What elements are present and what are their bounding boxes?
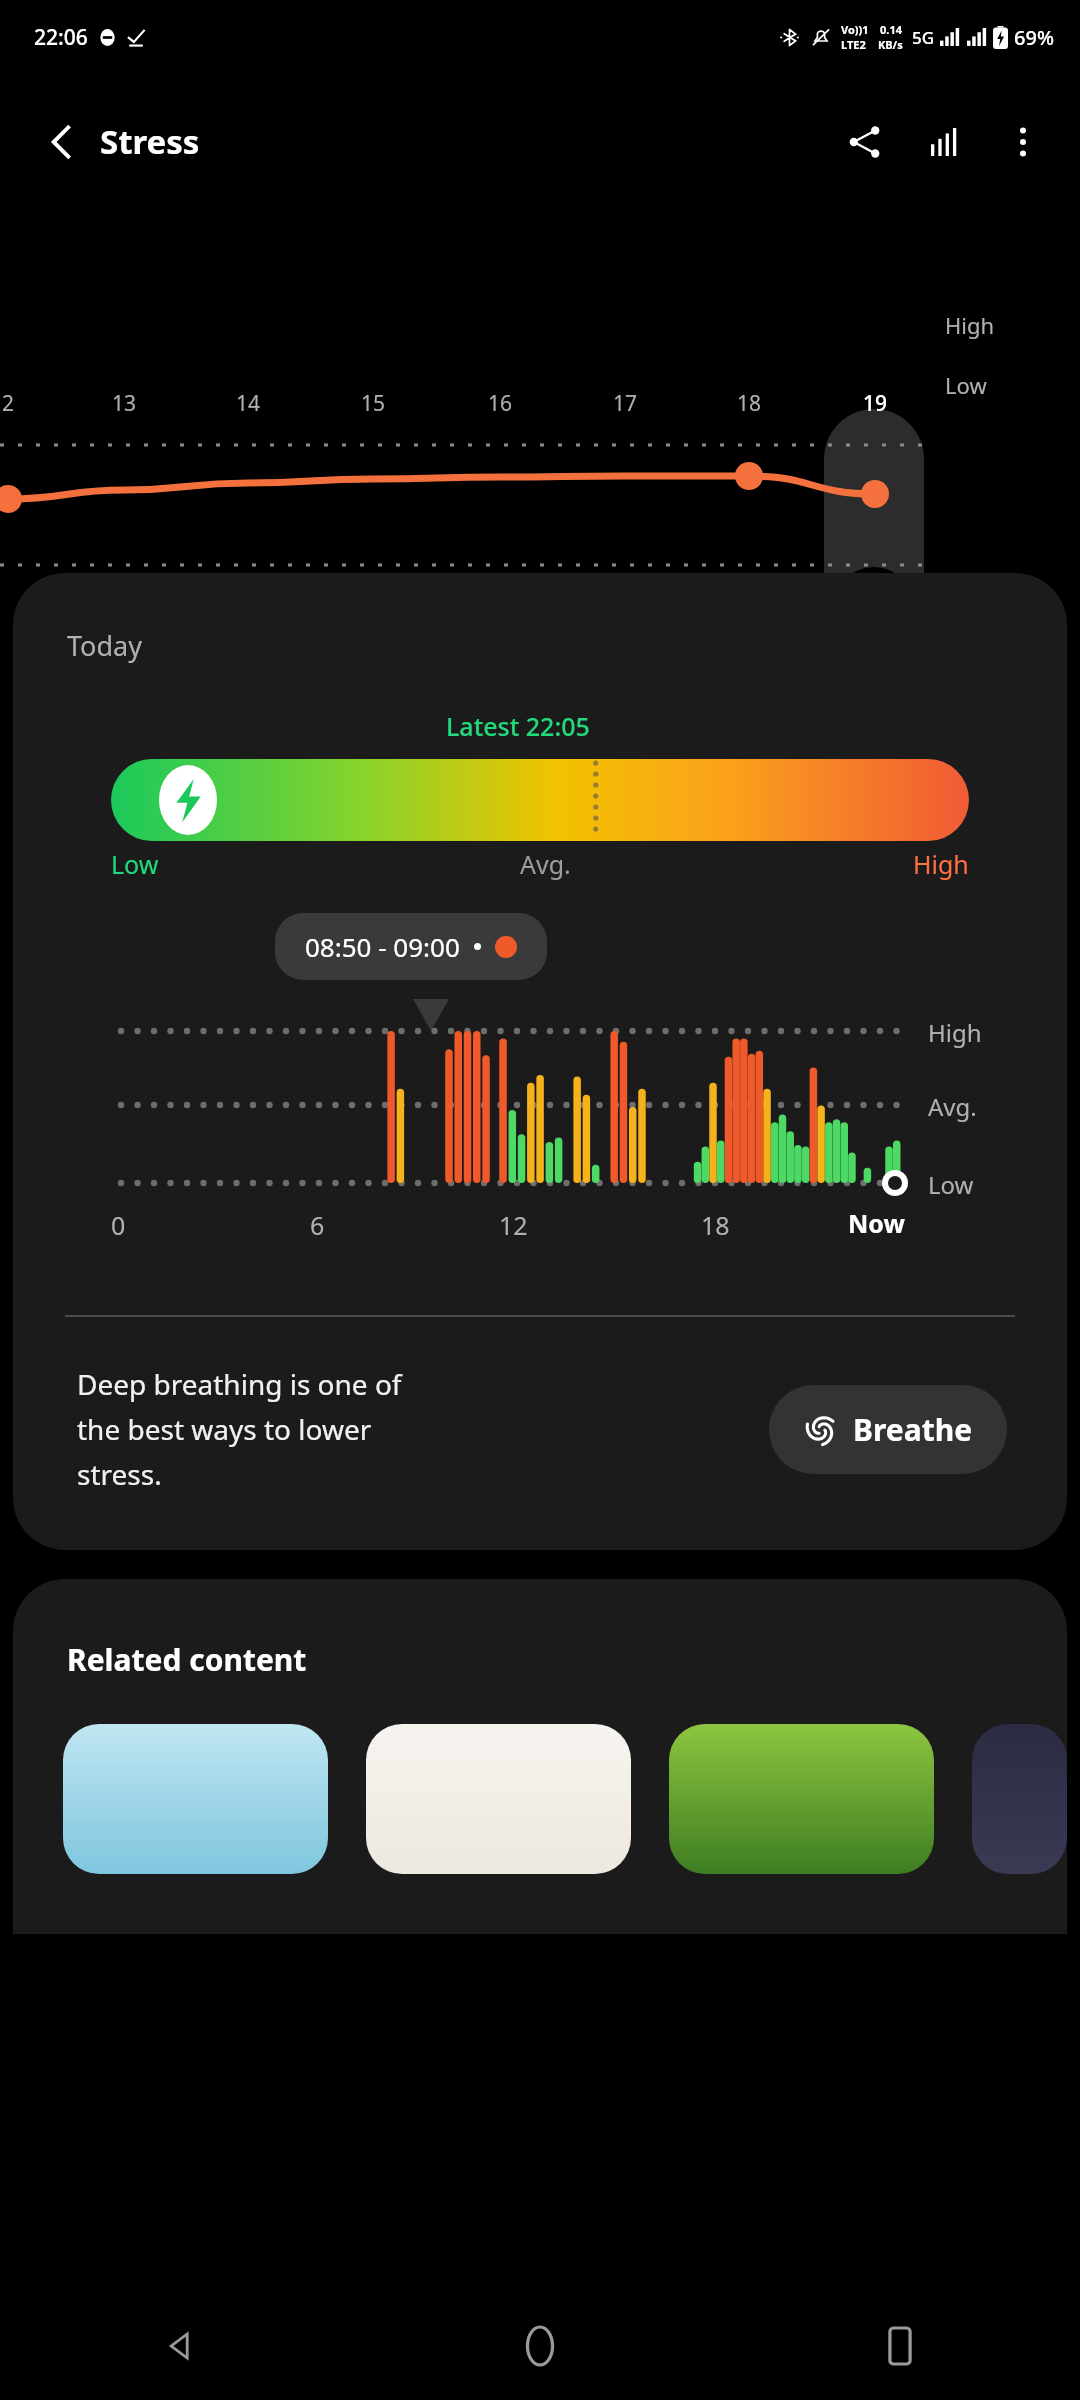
staticText: High <box>913 847 969 881</box>
button[interactable]: Recents <box>720 2292 1080 2400</box>
staticText: LTE2 <box>841 37 866 52</box>
button[interactable]: Breathe <box>769 1385 1007 1474</box>
button[interactable] <box>63 1724 328 1874</box>
button[interactable] <box>972 1724 1067 1874</box>
staticText: 2 <box>0 389 28 418</box>
staticText: 18 <box>729 389 769 418</box>
button[interactable] <box>366 1724 631 1874</box>
staticText: Avg. <box>928 1090 977 1123</box>
staticText: Vo))1 <box>841 22 869 37</box>
staticText: 13 <box>104 389 144 418</box>
staticText: Deep breathing is one of the best ways t… <box>77 1365 402 1494</box>
staticText: 0.14 <box>880 22 902 37</box>
staticText: Low <box>928 1168 974 1201</box>
staticText: Low <box>945 370 987 400</box>
staticText: High <box>928 1016 982 1049</box>
staticText: 0 <box>111 1208 126 1242</box>
staticText: 12 <box>499 1208 528 1242</box>
button[interactable]: Chart <box>916 113 974 171</box>
staticText: 22:06 <box>34 23 88 52</box>
staticText: 16 <box>480 389 520 418</box>
staticText: 69% <box>1014 24 1054 51</box>
staticText: 6 <box>310 1208 325 1242</box>
staticText: Breathe <box>853 1409 973 1450</box>
staticText: Today <box>67 627 142 664</box>
button[interactable]: More options <box>994 113 1052 171</box>
button[interactable]: Home <box>360 2292 720 2400</box>
staticText: Latest 22:05 <box>446 709 590 743</box>
staticText: High <box>945 310 995 340</box>
button[interactable]: Share <box>836 113 894 171</box>
staticText: KB/s <box>878 37 903 52</box>
staticText: 14 <box>228 389 268 418</box>
staticText: 18 <box>701 1208 730 1242</box>
staticText: 15 <box>353 389 393 418</box>
staticText: 08:50 - 09:00 <box>305 929 460 964</box>
staticText: 5G <box>912 26 935 49</box>
staticText: Stress <box>100 119 200 164</box>
button[interactable]: Back <box>0 2292 360 2400</box>
staticText: 19 <box>855 389 895 418</box>
staticText: 17 <box>605 389 645 418</box>
button[interactable] <box>669 1724 934 1874</box>
staticText: Related content <box>67 1639 307 1680</box>
staticText: Low <box>111 847 159 881</box>
staticText: Avg. <box>520 847 571 881</box>
staticText: Now <box>848 1206 905 1240</box>
button[interactable]: Back <box>36 116 88 168</box>
